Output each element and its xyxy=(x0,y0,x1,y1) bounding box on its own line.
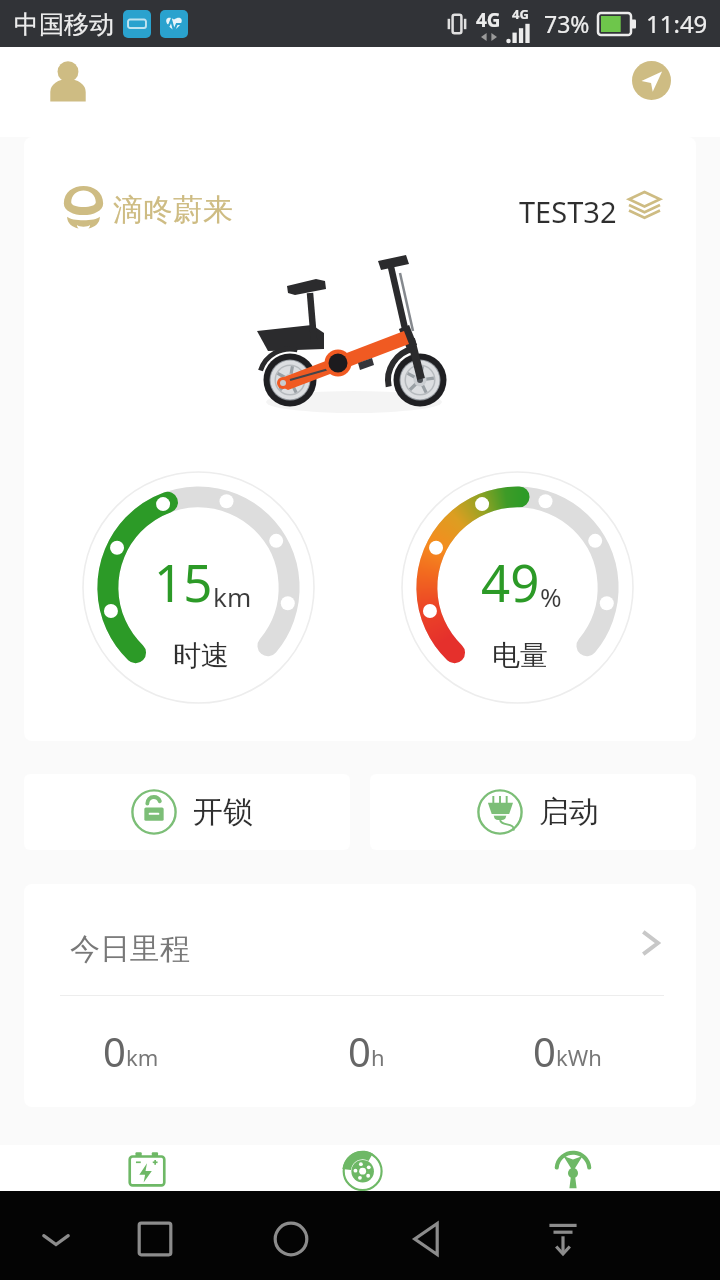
button[interactable]: Signal xyxy=(549,1145,597,1193)
staticText: 11:49 xyxy=(646,7,708,40)
staticText: 今日里程 xyxy=(70,930,190,968)
staticText: 启动 xyxy=(539,793,599,831)
staticText: TEST32 xyxy=(519,192,617,231)
staticText: 电量 xyxy=(492,638,548,673)
staticText: km xyxy=(213,579,252,614)
staticText: 0 xyxy=(103,1024,126,1078)
button[interactable]: Back xyxy=(405,1217,449,1261)
staticText: 4G xyxy=(512,5,529,23)
staticText: 时速 xyxy=(173,638,229,673)
staticText: % xyxy=(540,579,562,614)
staticText: 4G xyxy=(476,7,501,33)
button[interactable]: Notifications xyxy=(541,1217,585,1261)
staticText: kWh xyxy=(556,1042,602,1072)
button[interactable]: Profile xyxy=(45,56,91,102)
staticText: 滴咚蔚来 xyxy=(113,191,233,229)
button[interactable]: 开锁 xyxy=(24,774,350,850)
button[interactable]: 启动 xyxy=(370,774,696,850)
button[interactable]: Battery xyxy=(123,1145,171,1193)
button[interactable]: Hide xyxy=(34,1217,78,1261)
button[interactable]: 今日里程 xyxy=(24,884,696,1107)
staticText: 中国移动 xyxy=(14,9,114,40)
button[interactable]: Brake xyxy=(336,1145,384,1193)
staticText: 开锁 xyxy=(193,793,253,831)
staticText: 73% xyxy=(544,8,590,39)
staticText: 0 xyxy=(348,1024,371,1078)
staticText: h xyxy=(371,1042,385,1072)
staticText: 49 xyxy=(481,547,540,616)
staticText: 0 xyxy=(533,1024,556,1078)
button[interactable]: Locate xyxy=(632,61,671,100)
button[interactable]: Recents xyxy=(133,1217,177,1261)
staticText: km xyxy=(126,1042,159,1072)
button[interactable]: Home xyxy=(269,1217,313,1261)
staticText: 15 xyxy=(154,547,213,616)
